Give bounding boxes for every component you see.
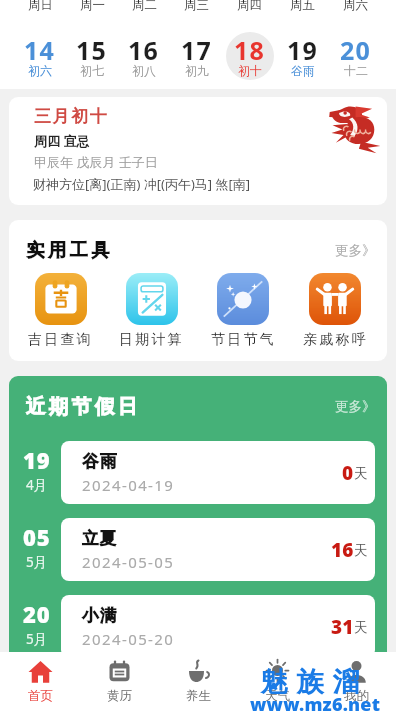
staticText: 19: [287, 33, 319, 67]
staticText: 魅族溜: [256, 665, 364, 699]
staticText: 周四: [237, 0, 262, 13]
staticText: 三月初十: [34, 106, 109, 127]
staticText: 周一: [80, 0, 105, 13]
staticText: 20: [23, 599, 51, 629]
staticText: 天: [354, 465, 368, 482]
staticText: 首页: [28, 688, 53, 704]
staticText: 初六: [28, 63, 52, 77]
staticText: 节日节气: [211, 331, 276, 349]
staticText: 初九: [185, 63, 209, 77]
button[interactable]: 我的: [317, 652, 396, 711]
staticText: 我的: [344, 688, 369, 704]
staticText: 2024-04-19: [82, 475, 175, 495]
button[interactable]: 18: [223, 33, 276, 81]
staticText: 初八: [132, 63, 156, 77]
staticText: 4月: [26, 476, 48, 494]
button[interactable]: 20: [13, 595, 375, 658]
staticText: 5月: [26, 553, 48, 571]
button[interactable]: 更多》: [331, 238, 380, 263]
button[interactable]: 节日节气: [197, 273, 289, 349]
staticText: 05: [23, 522, 51, 552]
button[interactable]: 首页: [0, 652, 80, 711]
staticText: 2024-05-05: [82, 552, 175, 572]
button[interactable]: 养生: [159, 652, 238, 711]
staticText: 天气: [265, 688, 290, 704]
staticText: 甲辰年 戊辰月 壬子日: [34, 153, 158, 171]
staticText: 周五: [290, 0, 315, 13]
staticText: 周二: [132, 0, 157, 13]
staticText: 更多》: [335, 242, 376, 259]
button[interactable]: 三月初十: [9, 97, 387, 205]
staticText: 初七: [80, 63, 104, 77]
staticText: 15: [76, 33, 108, 67]
staticText: 31: [331, 614, 354, 640]
button[interactable]: 天气: [238, 652, 317, 711]
button[interactable]: 17: [170, 33, 223, 81]
staticText: 周三: [184, 0, 209, 13]
button[interactable]: 16: [118, 33, 170, 81]
staticText: 吉日查询: [28, 331, 93, 349]
staticText: 黄历: [107, 688, 132, 704]
staticText: 财神方位[离](正南) 冲[(丙午)马] 煞[南]: [33, 175, 251, 193]
staticText: 18: [234, 33, 266, 67]
staticText: 亲戚称呼: [303, 331, 368, 349]
staticText: 谷雨: [291, 63, 315, 77]
staticText: 16: [331, 537, 354, 563]
staticText: 养生: [186, 688, 211, 704]
staticText: 小满: [82, 605, 118, 626]
button[interactable]: 黄历: [80, 652, 159, 711]
staticText: 更多》: [335, 398, 376, 415]
staticText: 16: [128, 33, 160, 67]
staticText: 日期计算: [119, 331, 184, 349]
staticText: 天: [354, 619, 368, 636]
button[interactable]: 20: [329, 33, 382, 81]
staticText: 周六: [343, 0, 368, 13]
staticText: 立夏: [82, 528, 118, 549]
staticText: 17: [181, 33, 213, 67]
staticText: 5月: [26, 630, 48, 648]
staticText: 初十: [238, 63, 262, 77]
staticText: 周日: [28, 0, 53, 13]
button[interactable]: 14: [14, 33, 66, 81]
staticText: 实用工具: [25, 239, 111, 262]
staticText: 十二: [344, 63, 368, 77]
staticText: 2024-05-20: [82, 629, 175, 649]
button[interactable]: 15: [66, 33, 118, 81]
button[interactable]: 日期计算: [106, 273, 197, 349]
button[interactable]: 更多》: [331, 394, 380, 419]
button[interactable]: 19: [276, 33, 329, 81]
staticText: 14: [24, 33, 56, 67]
staticText: www.mz6.net: [250, 692, 381, 711]
button[interactable]: 05: [13, 518, 375, 581]
button[interactable]: 19: [13, 441, 375, 504]
staticText: 19: [23, 445, 51, 475]
staticText: 20: [340, 33, 372, 67]
button[interactable]: 亲戚称呼: [289, 273, 381, 349]
staticText: 0: [342, 460, 354, 486]
staticText: 近期节假日: [24, 394, 139, 419]
staticText: 天: [354, 542, 368, 559]
staticText: 周四 宜忌: [34, 132, 90, 150]
staticText: 谷雨: [82, 451, 118, 472]
button[interactable]: 吉日查询: [15, 273, 106, 349]
